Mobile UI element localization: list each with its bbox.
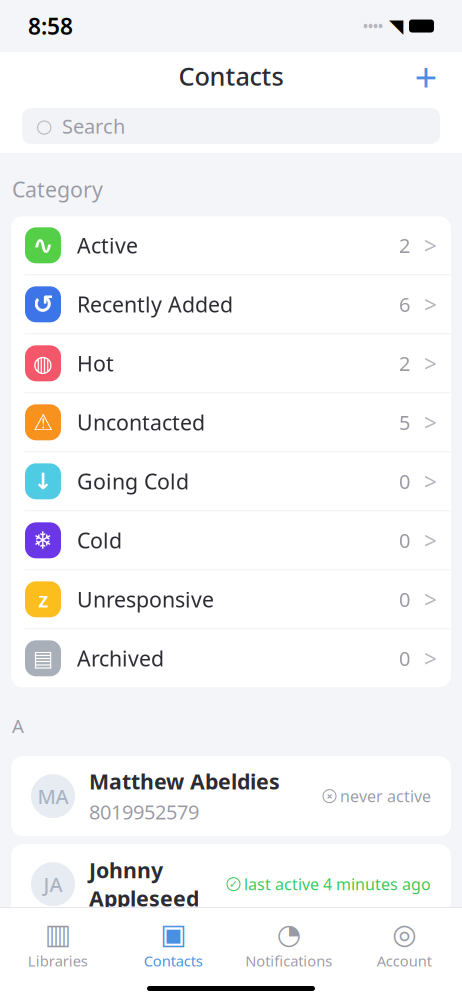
staticText: ×: [326, 789, 332, 803]
staticText: Category: [12, 175, 103, 203]
staticText: 2: [399, 350, 410, 377]
button[interactable]: ◍: [11, 334, 451, 393]
staticText: 0: [399, 527, 410, 554]
button[interactable]: ▤: [11, 629, 451, 687]
staticText: ❄: [33, 527, 53, 554]
staticText: ↓: [33, 468, 52, 494]
staticText: ◔: [277, 918, 301, 950]
staticText: z: [38, 585, 48, 613]
staticText: Matthew Abeldies: [89, 767, 280, 795]
staticText: Contacts: [144, 951, 203, 970]
button[interactable]: ▥: [0, 916, 115, 976]
button[interactable]: ↺: [11, 275, 451, 334]
staticText: ∿: [32, 231, 53, 260]
button[interactable]: Add contact: [404, 54, 448, 98]
staticText: Unresponsive: [77, 585, 214, 613]
staticText: Archived: [77, 644, 164, 672]
staticText: >: [424, 289, 437, 319]
button[interactable]: ↓: [11, 452, 451, 511]
staticText: ↺: [32, 290, 53, 319]
staticText: +: [414, 49, 437, 102]
staticText: ◥: [389, 15, 403, 37]
button[interactable]: ◔: [231, 916, 346, 976]
staticText: Hot: [77, 349, 114, 377]
button[interactable]: ❄: [11, 511, 451, 570]
staticText: >: [424, 584, 437, 614]
staticText: ○: [36, 115, 52, 137]
staticText: Search: [62, 113, 125, 139]
button[interactable]: ◎: [346, 916, 462, 976]
staticText: MA: [37, 783, 68, 809]
button[interactable]: ○: [22, 108, 440, 144]
staticText: 0: [399, 645, 410, 672]
staticText: >: [424, 466, 437, 496]
staticText: Account: [377, 951, 432, 970]
staticText: ▤: [33, 646, 53, 670]
staticText: Uncontacted: [77, 408, 205, 436]
staticText: 5: [399, 409, 410, 436]
staticText: >: [424, 643, 437, 673]
staticText: >: [424, 525, 437, 555]
staticText: ▥: [45, 918, 71, 950]
button[interactable]: ∿: [11, 216, 451, 275]
button[interactable]: MA: [11, 756, 451, 836]
staticText: 8:58: [28, 11, 73, 41]
staticText: ••••: [363, 17, 383, 35]
staticText: Johnny Appleseed: [89, 856, 199, 912]
staticText: ◎: [392, 918, 416, 950]
button[interactable]: JA: [11, 844, 451, 924]
staticText: A: [12, 713, 24, 738]
staticText: Cold: [77, 526, 122, 554]
staticText: Active: [77, 231, 138, 259]
staticText: Notifications: [245, 951, 332, 970]
staticText: last active 4 minutes ago: [244, 873, 431, 895]
staticText: 2: [399, 232, 410, 259]
staticText: Libraries: [28, 951, 88, 970]
button[interactable]: z: [11, 570, 451, 629]
staticText: ⚠: [33, 409, 53, 435]
staticText: ✓: [229, 878, 238, 890]
staticText: Recently Added: [77, 290, 233, 318]
staticText: 6: [399, 291, 410, 318]
staticText: >: [424, 348, 437, 378]
staticText: 8019952579: [89, 798, 199, 825]
staticText: >: [424, 230, 437, 260]
button[interactable]: ▣: [115, 916, 231, 976]
button[interactable]: ⚠: [11, 393, 451, 452]
staticText: Contacts: [178, 59, 283, 93]
staticText: ▣: [160, 918, 186, 950]
staticText: 0: [399, 586, 410, 613]
staticText: 0: [399, 468, 410, 495]
staticText: JA: [43, 871, 62, 897]
staticText: >: [424, 407, 437, 437]
staticText: Going Cold: [77, 467, 189, 495]
staticText: ◍: [33, 350, 53, 376]
staticText: never active: [340, 785, 431, 807]
